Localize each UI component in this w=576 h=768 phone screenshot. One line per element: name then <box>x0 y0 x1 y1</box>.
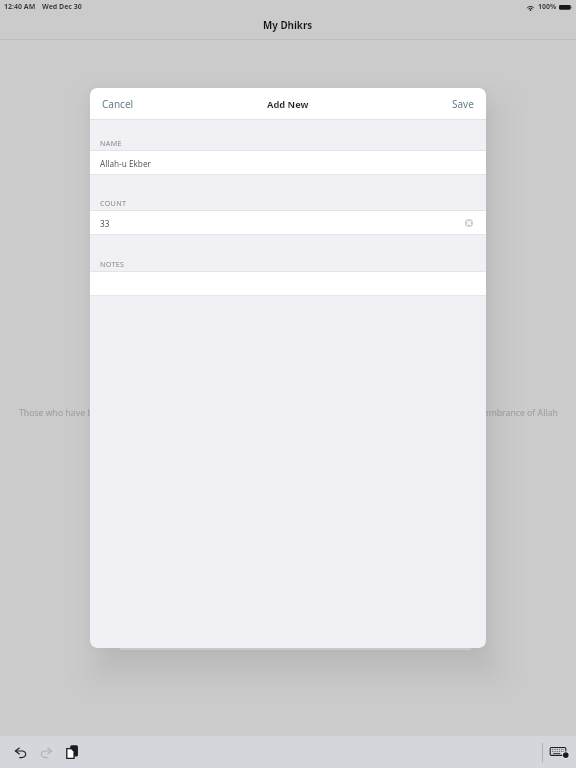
staticText: Wed Dec 30 <box>42 2 82 12</box>
staticText: Cancel <box>102 97 134 111</box>
staticText: 12:40 AM <box>4 2 36 12</box>
staticText: 33 <box>100 218 110 229</box>
staticText: 100% <box>538 2 557 12</box>
button[interactable] <box>90 272 486 296</box>
button[interactable]: Allah-u Ekber <box>90 151 486 175</box>
button[interactable]: Hide keyboard <box>548 740 572 764</box>
staticText: COUNT <box>100 198 127 208</box>
staticText: My Dhikrs <box>263 19 313 32</box>
staticText: Those who have believed and whose hearts… <box>19 407 558 419</box>
button[interactable]: Cancel <box>90 91 146 117</box>
button[interactable]: Save <box>440 91 486 117</box>
button[interactable]: Clear text <box>465 219 473 227</box>
staticText: Add New <box>267 98 309 111</box>
button[interactable]: Paste <box>60 740 84 764</box>
button[interactable]: 33 <box>90 211 486 235</box>
staticText: Save <box>452 97 474 111</box>
button[interactable]: Redo <box>34 740 58 764</box>
button[interactable]: Undo <box>8 740 32 764</box>
staticText: Allah-u Ekber <box>100 158 151 169</box>
staticText: NOTES <box>100 259 125 269</box>
staticText: NAME <box>100 138 122 148</box>
